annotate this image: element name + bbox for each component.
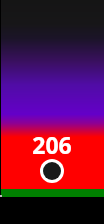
button[interactable]: Record [40,159,64,183]
staticText: 206 [32,129,72,160]
button[interactable]: 206 [32,129,72,160]
button[interactable]: Progress [0,189,104,197]
button[interactable]: Viewfinder [0,0,104,137]
